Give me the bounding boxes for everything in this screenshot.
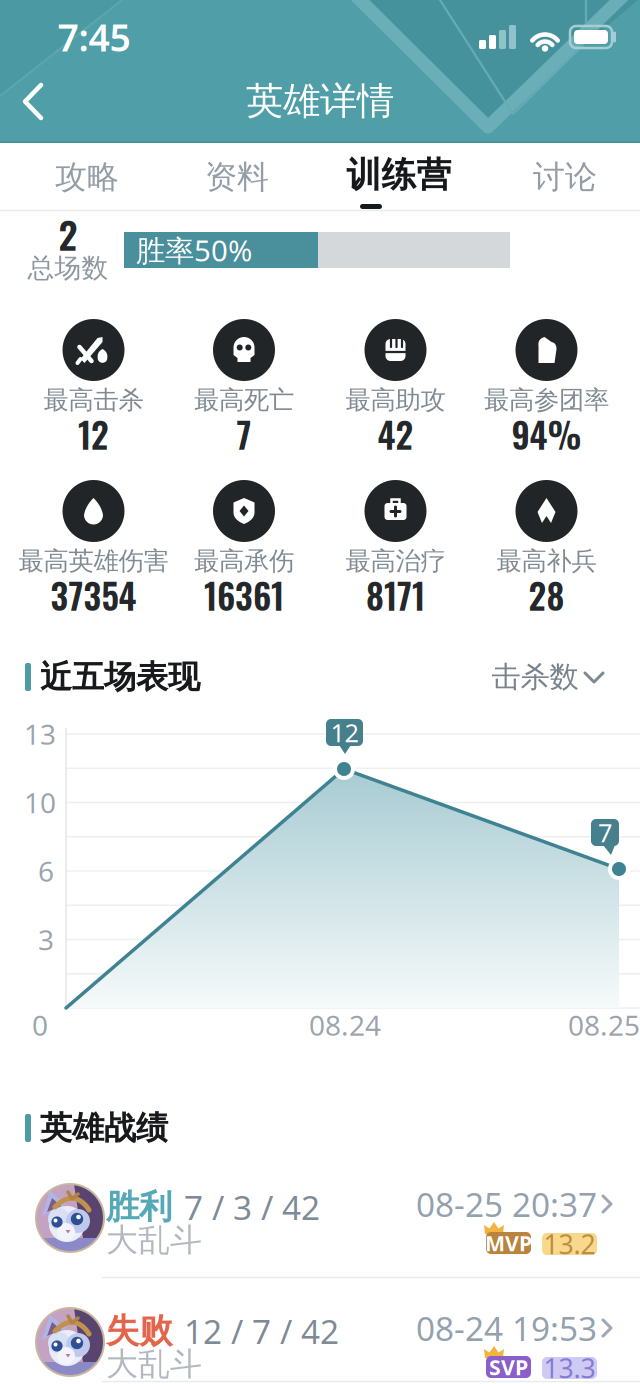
- staticText: 胜利: [106, 1186, 172, 1227]
- staticText: 42: [377, 408, 413, 460]
- staticText: 16361: [204, 569, 284, 621]
- staticText: 英雄战绩: [40, 1108, 168, 1148]
- staticText: 近五场表现: [40, 657, 200, 697]
- staticText: 0: [32, 1006, 48, 1044]
- staticText: 94%: [511, 408, 581, 460]
- staticText: 最高击杀: [43, 384, 143, 415]
- staticText: 2: [58, 206, 77, 262]
- staticText: 最高治疗: [345, 545, 445, 576]
- staticText: 攻略: [55, 157, 119, 197]
- staticText: 最高补兵: [496, 545, 596, 576]
- staticText: 大乱斗: [106, 1344, 202, 1384]
- staticText: 最高参团率: [484, 384, 609, 415]
- staticText: 最高承伤: [194, 545, 294, 576]
- button[interactable]: 失败: [0, 1280, 640, 1384]
- button[interactable]: 资料: [182, 144, 292, 210]
- staticText: 讨论: [533, 157, 597, 197]
- staticText: 6: [38, 852, 54, 890]
- staticText: 胜率50%: [136, 230, 252, 269]
- staticText: 08-25 20:37: [416, 1182, 597, 1226]
- staticText: 总场数: [27, 252, 108, 284]
- button[interactable]: 击杀数: [495, 657, 615, 697]
- staticText: 08.25: [568, 1006, 640, 1044]
- staticText: 37354: [50, 569, 136, 621]
- staticText: 12: [330, 716, 358, 749]
- staticText: 13.2: [543, 1226, 595, 1262]
- staticText: 失败: [106, 1310, 172, 1351]
- staticText: 13.3: [543, 1350, 595, 1384]
- button[interactable]: [3, 71, 63, 131]
- staticText: 最高死亡: [194, 384, 294, 415]
- button[interactable]: 讨论: [510, 144, 620, 210]
- staticText: 资料: [205, 157, 269, 197]
- staticText: 大乱斗: [106, 1220, 202, 1260]
- staticText: 13: [24, 715, 56, 753]
- staticText: 最高助攻: [345, 384, 445, 415]
- staticText: 7: [598, 816, 612, 849]
- staticText: 08-24 19:53: [416, 1306, 597, 1350]
- staticText: 28: [528, 569, 564, 621]
- staticText: 12: [78, 408, 109, 460]
- staticText: 英雄详情: [246, 78, 394, 124]
- staticText: 8171: [366, 569, 425, 621]
- staticText: 最高英雄伤害: [18, 545, 168, 576]
- staticText: 10: [24, 784, 56, 821]
- staticText: SVP: [489, 1353, 528, 1381]
- button[interactable]: 攻略: [32, 144, 142, 210]
- staticText: 7: [236, 408, 251, 460]
- staticText: 3: [38, 921, 54, 958]
- staticText: 训练营: [346, 154, 451, 196]
- button[interactable]: 训练营: [334, 144, 464, 210]
- button[interactable]: 胜利: [0, 1156, 640, 1280]
- staticText: 击杀数: [491, 659, 578, 695]
- staticText: 08.24: [309, 1006, 381, 1044]
- staticText: 7:45: [57, 12, 130, 62]
- staticText: 12 / 7 / 42: [184, 1309, 339, 1353]
- staticText: MVP: [485, 1229, 532, 1257]
- staticText: 7 / 3 / 42: [184, 1185, 320, 1229]
